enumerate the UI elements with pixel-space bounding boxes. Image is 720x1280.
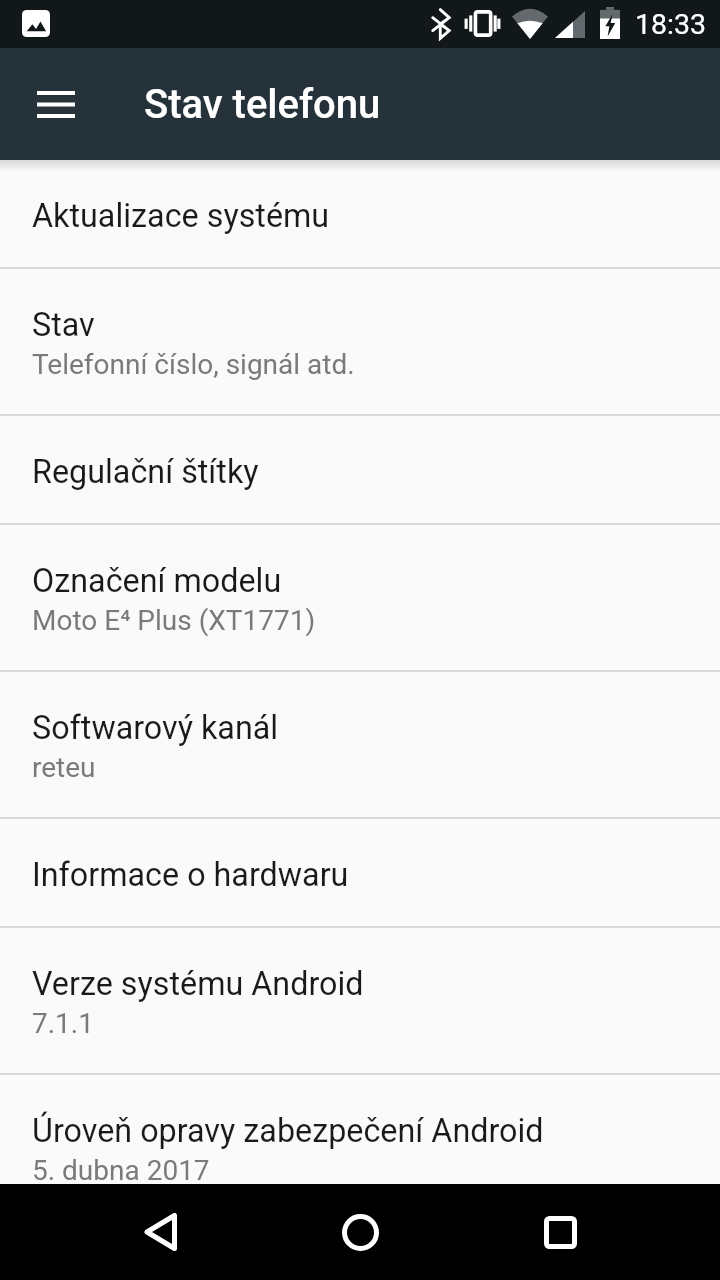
staticText: 18:33 <box>635 8 706 41</box>
staticText: Regulační štítky <box>32 453 259 491</box>
staticText: Telefonní číslo, signál atd. <box>32 348 355 381</box>
button[interactable]: Informace o hardwaru <box>0 819 720 926</box>
staticText: Moto E⁴ Plus (XT1771) <box>32 604 316 637</box>
staticText: reteu <box>32 751 96 784</box>
staticText: Stav <box>32 306 95 344</box>
staticText: 5. dubna 2017 <box>32 1154 210 1187</box>
staticText: 7.1.1 <box>32 1007 94 1040</box>
button[interactable]: Označení modelu <box>0 525 720 670</box>
staticText: Verze systému Android <box>32 965 364 1003</box>
staticText: Informace o hardwaru <box>32 856 349 894</box>
staticText: Úroveň opravy zabezpečení Android <box>32 1112 544 1150</box>
button[interactable]: Úroveň opravy zabezpečení Android <box>0 1075 720 1220</box>
staticText: Označení modelu <box>32 562 282 600</box>
button[interactable]: Open navigation menu <box>20 68 92 140</box>
button[interactable]: Regulační štítky <box>0 416 720 523</box>
button[interactable]: Aktualizace systému <box>0 160 720 267</box>
button[interactable]: Recent apps <box>520 1192 600 1272</box>
button[interactable]: Back <box>120 1192 200 1272</box>
button[interactable]: Stav <box>0 269 720 414</box>
button[interactable]: Softwarový kanál <box>0 672 720 817</box>
button[interactable]: Verze systému Android <box>0 928 720 1073</box>
staticText: Softwarový kanál <box>32 709 279 747</box>
button[interactable]: Home <box>320 1192 400 1272</box>
staticText: Stav telefonu <box>144 81 381 128</box>
staticText: Aktualizace systému <box>32 197 330 235</box>
